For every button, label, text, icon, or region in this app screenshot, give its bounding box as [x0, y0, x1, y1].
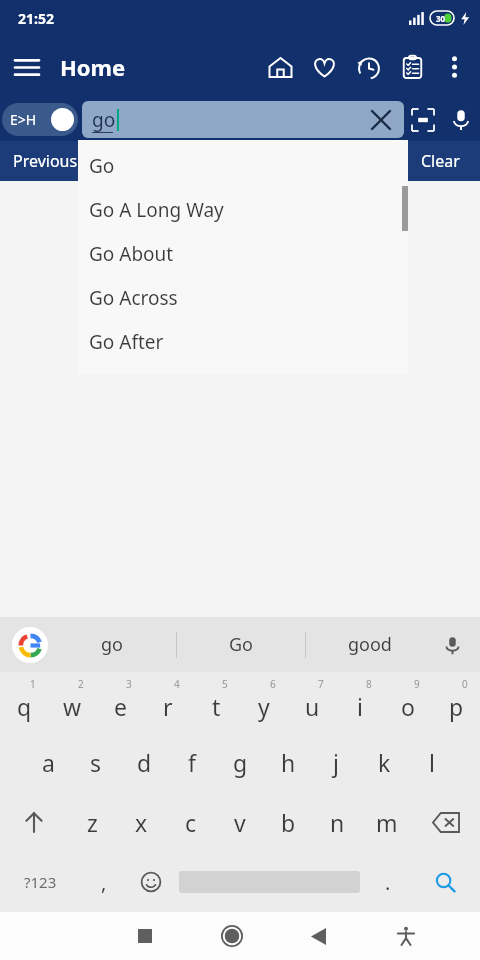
button[interactable]: Backspace — [411, 792, 480, 852]
button[interactable]: Previous — [0, 141, 90, 181]
staticText: k — [378, 747, 391, 778]
button[interactable]: c — [166, 792, 215, 852]
button[interactable]: z — [68, 792, 117, 852]
staticText: w — [63, 691, 82, 722]
staticText: r — [163, 691, 173, 722]
button[interactable]: Shift — [0, 792, 68, 852]
button[interactable]: Menu — [0, 40, 54, 94]
button[interactable]: i — [336, 672, 384, 732]
button[interactable]: E>H — [2, 103, 78, 136]
staticText: x — [135, 807, 148, 838]
button[interactable]: v — [215, 792, 264, 852]
staticText: 2 — [78, 677, 84, 691]
staticText: z — [87, 807, 98, 838]
button[interactable]: b — [264, 792, 313, 852]
button[interactable]: Voice search — [442, 101, 480, 139]
staticText: 3 — [126, 677, 132, 691]
button[interactable]: p — [432, 672, 480, 732]
button[interactable]: Go A Long Way — [78, 188, 408, 232]
button[interactable]: a — [24, 732, 72, 792]
button[interactable]: Clear — [400, 141, 480, 181]
staticText: v — [234, 807, 246, 838]
staticText: h — [281, 747, 296, 778]
staticText: Previous — [13, 150, 78, 172]
staticText: Home — [60, 52, 126, 82]
button[interactable]: u — [288, 672, 336, 732]
button[interactable]: Recent apps — [101, 912, 188, 960]
staticText: b — [281, 807, 296, 838]
button[interactable]: s — [72, 732, 120, 792]
staticText: Go After — [89, 329, 164, 355]
staticText: 4 — [174, 677, 180, 691]
button[interactable]: Emoji — [127, 852, 174, 912]
button[interactable]: h — [264, 732, 312, 792]
button[interactable]: l — [408, 732, 456, 792]
staticText: 6 — [270, 677, 276, 691]
button[interactable] — [174, 852, 364, 912]
staticText: p — [449, 691, 464, 722]
staticText: Go — [89, 153, 115, 179]
button[interactable]: d — [120, 732, 168, 792]
staticText: t — [212, 691, 221, 722]
button[interactable]: w — [48, 672, 96, 732]
button[interactable]: Go — [177, 617, 305, 672]
staticText: 5 — [222, 677, 228, 691]
button[interactable]: f — [168, 732, 216, 792]
button[interactable]: Home — [188, 912, 275, 960]
button[interactable]: o — [384, 672, 432, 732]
staticText: d — [137, 747, 152, 778]
staticText: g — [233, 747, 248, 778]
button[interactable]: Clear text — [364, 103, 398, 137]
button[interactable]: go — [82, 101, 404, 138]
button[interactable]: t — [192, 672, 240, 732]
button[interactable]: Search — [411, 852, 480, 912]
button[interactable]: e — [96, 672, 144, 732]
button[interactable]: OCR scan — [404, 101, 442, 139]
staticText: s — [90, 747, 102, 778]
button[interactable]: m — [362, 792, 411, 852]
button[interactable]: Home — [258, 45, 302, 89]
staticText: y — [258, 691, 270, 722]
button[interactable]: q — [0, 672, 48, 732]
button[interactable]: Favorites — [302, 45, 346, 89]
staticText: Go — [229, 632, 253, 657]
button[interactable]: Go About — [78, 232, 408, 276]
staticText: . — [385, 869, 391, 896]
button[interactable]: k — [360, 732, 408, 792]
staticText: c — [185, 807, 197, 838]
staticText: m — [376, 807, 398, 838]
staticText: u — [305, 691, 320, 722]
staticText: good — [348, 632, 392, 657]
button[interactable]: Back — [275, 912, 362, 960]
staticText: a — [42, 747, 55, 778]
button[interactable]: g — [216, 732, 264, 792]
staticText: 1 — [30, 677, 36, 691]
button[interactable]: x — [117, 792, 166, 852]
button[interactable]: , — [80, 852, 127, 912]
staticText: go — [92, 107, 116, 133]
staticText: l — [429, 747, 435, 778]
staticText: 21:52 — [18, 9, 54, 28]
button[interactable]: Go — [78, 144, 408, 188]
button[interactable]: Voice input — [434, 627, 470, 663]
button[interactable]: Word list — [390, 45, 434, 89]
button[interactable]: Go Across — [78, 276, 408, 320]
staticText: E>H — [10, 110, 37, 129]
staticText: Clear — [421, 150, 460, 172]
button[interactable]: History — [346, 45, 390, 89]
button[interactable]: go — [48, 617, 176, 672]
staticText: q — [17, 691, 32, 722]
button[interactable]: n — [313, 792, 362, 852]
button[interactable]: Google — [12, 627, 48, 663]
button[interactable]: More options — [434, 47, 474, 87]
button[interactable]: Accessibility — [362, 912, 449, 960]
button[interactable]: ?123 — [0, 852, 80, 912]
button[interactable]: good — [306, 617, 434, 672]
button[interactable]: Go After — [78, 320, 408, 364]
button[interactable]: . — [364, 852, 411, 912]
button[interactable]: r — [144, 672, 192, 732]
button[interactable]: y — [240, 672, 288, 732]
button[interactable]: j — [312, 732, 360, 792]
staticText: o — [401, 691, 415, 722]
staticText: e — [114, 691, 127, 722]
